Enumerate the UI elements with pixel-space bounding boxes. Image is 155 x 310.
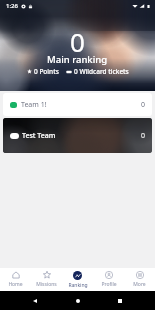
staticText: Test Team (22, 131, 56, 141)
button[interactable]: Test Team (3, 118, 152, 153)
staticText: Ranking (68, 282, 88, 289)
button[interactable]: Recents (113, 294, 127, 308)
button[interactable]: Ranking (62, 268, 93, 291)
button[interactable]: Back (28, 294, 42, 308)
staticText: 0 Wildcard tickets (74, 67, 129, 76)
button[interactable]: Team 1! (3, 93, 152, 116)
staticText: 0 (141, 131, 146, 141)
staticText: Home (8, 281, 23, 288)
staticText: Missions (36, 281, 57, 288)
staticText: 0 Points (34, 67, 59, 76)
staticText: Profile (101, 281, 117, 288)
button[interactable]: Profile (93, 268, 124, 291)
button[interactable]: Home (0, 268, 31, 291)
staticText: 1:26 (6, 2, 18, 10)
staticText: Main ranking (47, 53, 108, 66)
button[interactable]: Missions (31, 268, 62, 291)
staticText: More (133, 281, 146, 288)
staticText: 0 (141, 100, 146, 110)
button[interactable]: More (124, 268, 155, 291)
staticText: 0 (70, 24, 85, 59)
button[interactable]: Home (71, 294, 85, 308)
staticText: Team 1! (21, 100, 47, 110)
